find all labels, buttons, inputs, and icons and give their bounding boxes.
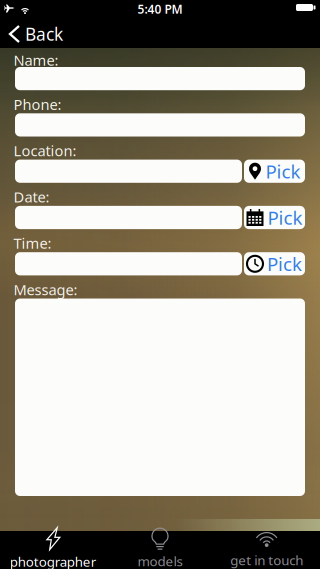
staticText: Location:	[13, 141, 76, 160]
staticText: photographer	[10, 553, 97, 569]
staticText: Pick	[265, 159, 300, 184]
staticText: Name:	[13, 50, 58, 70]
staticText: Pick	[267, 251, 302, 276]
button[interactable]: photographer	[0, 531, 107, 569]
button[interactable]: get in touch	[213, 531, 320, 569]
button[interactable]: Pick location	[244, 160, 305, 183]
staticText: Phone:	[13, 94, 61, 114]
staticText: Time:	[13, 233, 51, 253]
button[interactable]: models	[107, 531, 213, 569]
staticText: models	[137, 552, 182, 569]
staticText: Back	[25, 22, 63, 45]
staticText: 5:40 PM	[137, 1, 182, 17]
staticText: Date:	[13, 187, 49, 207]
button[interactable]: Pick time	[244, 252, 305, 275]
button[interactable]: Back	[0, 21, 73, 47]
button[interactable]: Pick date	[244, 206, 305, 229]
staticText: Message:	[13, 280, 77, 299]
staticText: Pick	[267, 205, 302, 230]
staticText: get in touch	[230, 551, 303, 569]
